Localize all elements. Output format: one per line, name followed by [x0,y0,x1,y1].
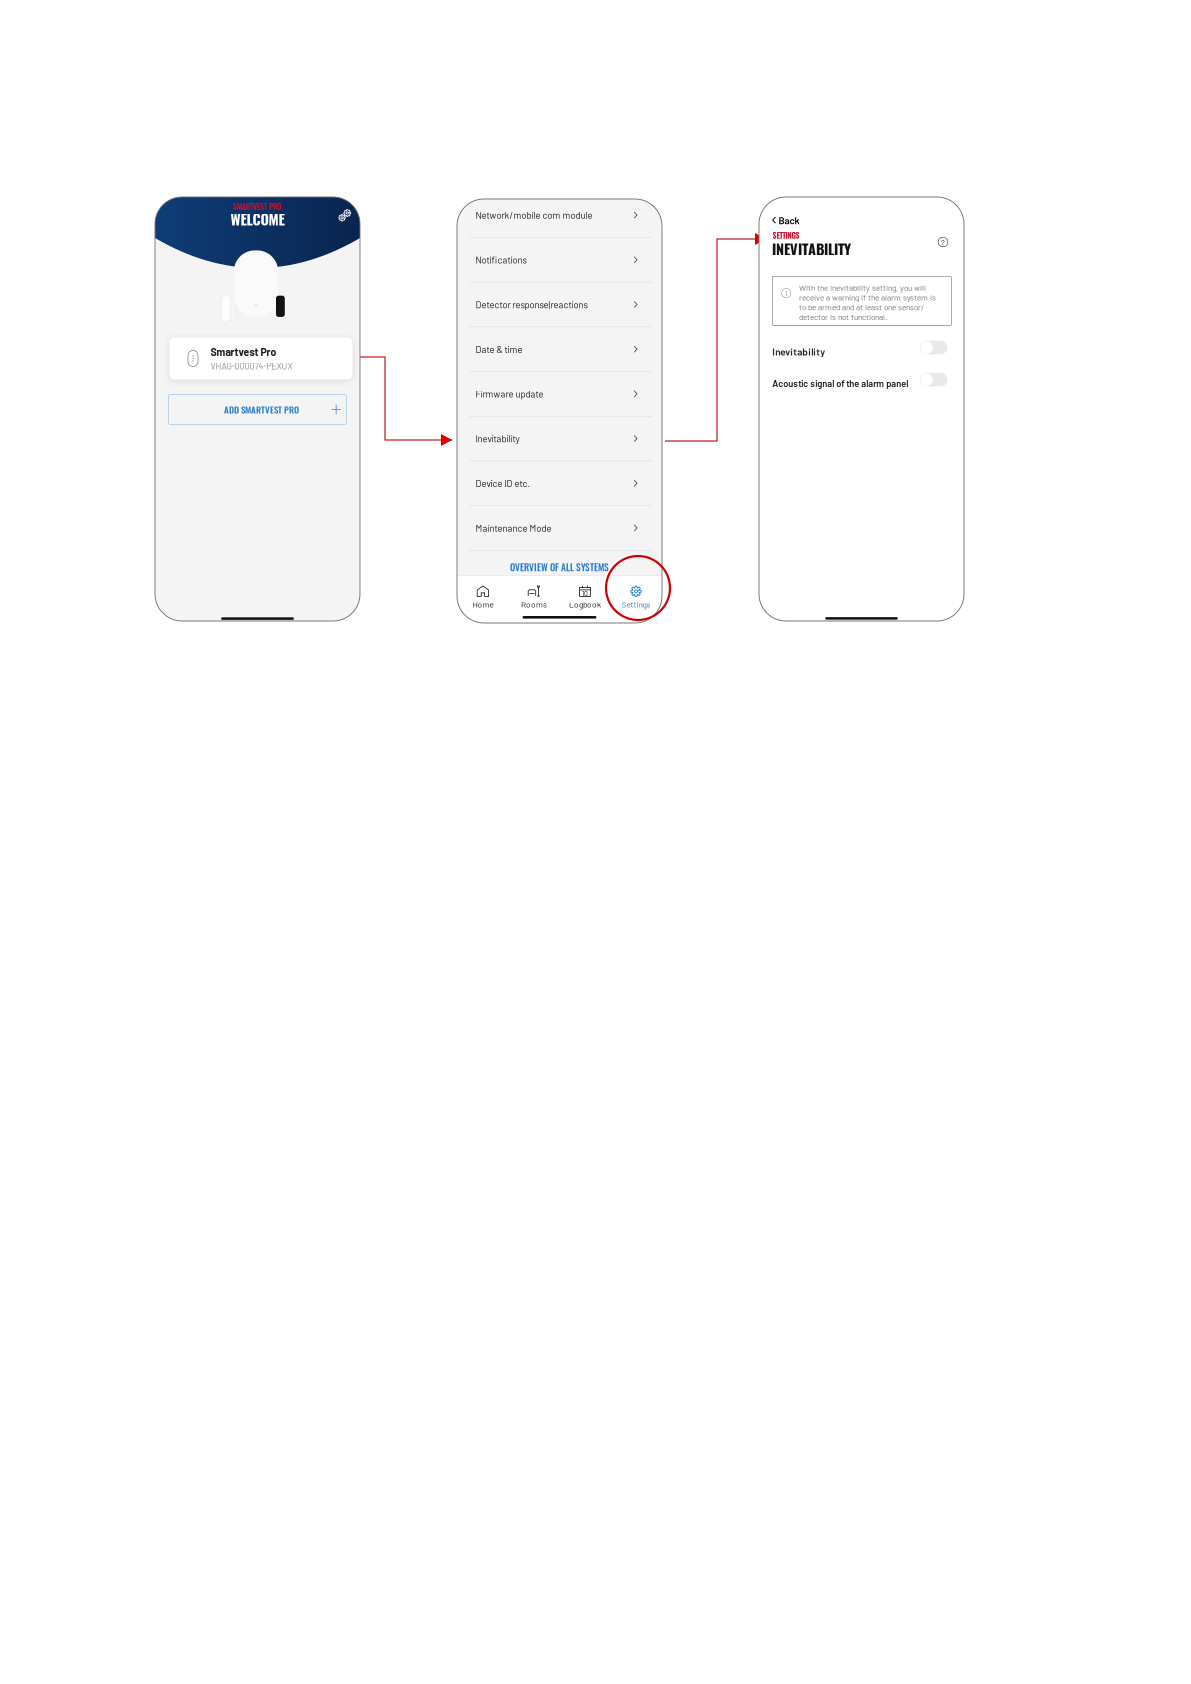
staticText: Settings [621,599,650,609]
staticText: INEVITABILITY [772,238,851,260]
button[interactable]: Network/mobile com module [469,193,652,237]
staticText: WELCOME [230,208,284,230]
button[interactable]: Back [772,213,800,228]
button[interactable]: Settings [335,206,353,224]
button[interactable]: Rooms [508,582,559,612]
staticText: Detector response|reactions [475,299,587,310]
button[interactable]: 10 [559,582,610,612]
button[interactable]: Settings [610,582,661,612]
button[interactable]: Date & time [469,327,652,371]
staticText: Firmware update [475,388,543,399]
button[interactable]: Notifications [469,238,652,282]
staticText: Network/mobile com module [475,209,592,221]
staticText: With the inevitability setting, you will… [799,282,936,321]
staticText: 10 [582,589,588,597]
staticText: Back [779,214,800,226]
button[interactable]: Acoustic signal toggle [920,373,947,386]
staticText: Notifications [475,254,526,265]
staticText: Smartvest Pro [210,346,276,358]
button[interactable]: Device ID etc. [469,461,652,505]
staticText: Rooms [521,599,547,609]
staticText: Maintenance Mode [475,522,551,534]
staticText: SMARTVEST PRO [233,201,282,212]
button[interactable]: Inevitability [469,416,652,461]
button[interactable]: Maintenance Mode [469,506,652,550]
staticText: Date & time [475,344,522,355]
staticText: i [785,288,787,298]
staticText: Inevitability [772,346,825,357]
staticText: ADD SMARTVEST PRO [224,403,299,416]
button[interactable]: Firmware update [469,372,652,416]
staticText: Acoustic signal of the alarm panel [772,378,908,389]
button[interactable]: OVERVIEW OF ALL SYSTEMS [457,558,662,576]
button[interactable]: Home [457,582,508,612]
button[interactable]: ADD SMARTVEST PRO [169,395,346,424]
button[interactable]: Detector response|reactions [469,282,652,326]
staticText: Device ID etc. [475,478,530,489]
staticText: VHAG-000074-PEXUX [210,361,292,371]
staticText: Home [472,599,493,609]
staticText: OVERVIEW OF ALL SYSTEMS [510,560,609,574]
staticText: ? [941,237,945,247]
button[interactable]: Help [935,234,950,249]
button[interactable]: Inevitability toggle [920,341,947,354]
button[interactable]: Smartvest Pro [169,337,352,379]
staticText: Logbook [569,599,601,609]
staticText: SETTINGS [772,230,799,241]
staticText: Inevitability [475,433,519,444]
